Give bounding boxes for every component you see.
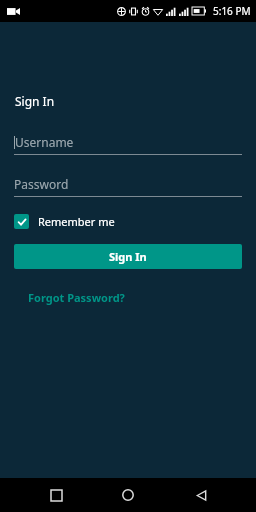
- staticText: Password: [14, 176, 69, 192]
- button[interactable]: Password: [14, 176, 242, 197]
- staticText: Sign In: [15, 93, 55, 109]
- staticText: 5:16 PM: [213, 4, 251, 18]
- button[interactable]: Username: [14, 134, 242, 155]
- staticText: Remember me: [38, 214, 115, 229]
- staticText: Forgot Password?: [28, 290, 125, 305]
- button[interactable]: Home: [111, 478, 145, 512]
- button[interactable]: Remember me: [14, 214, 115, 229]
- staticText: Username: [15, 134, 74, 150]
- button[interactable]: Sign In: [14, 244, 242, 269]
- button[interactable]: Back: [184, 478, 218, 512]
- staticText: Sign In: [109, 249, 147, 264]
- button[interactable]: Recent apps: [39, 478, 73, 512]
- button[interactable]: Forgot Password?: [28, 290, 125, 305]
